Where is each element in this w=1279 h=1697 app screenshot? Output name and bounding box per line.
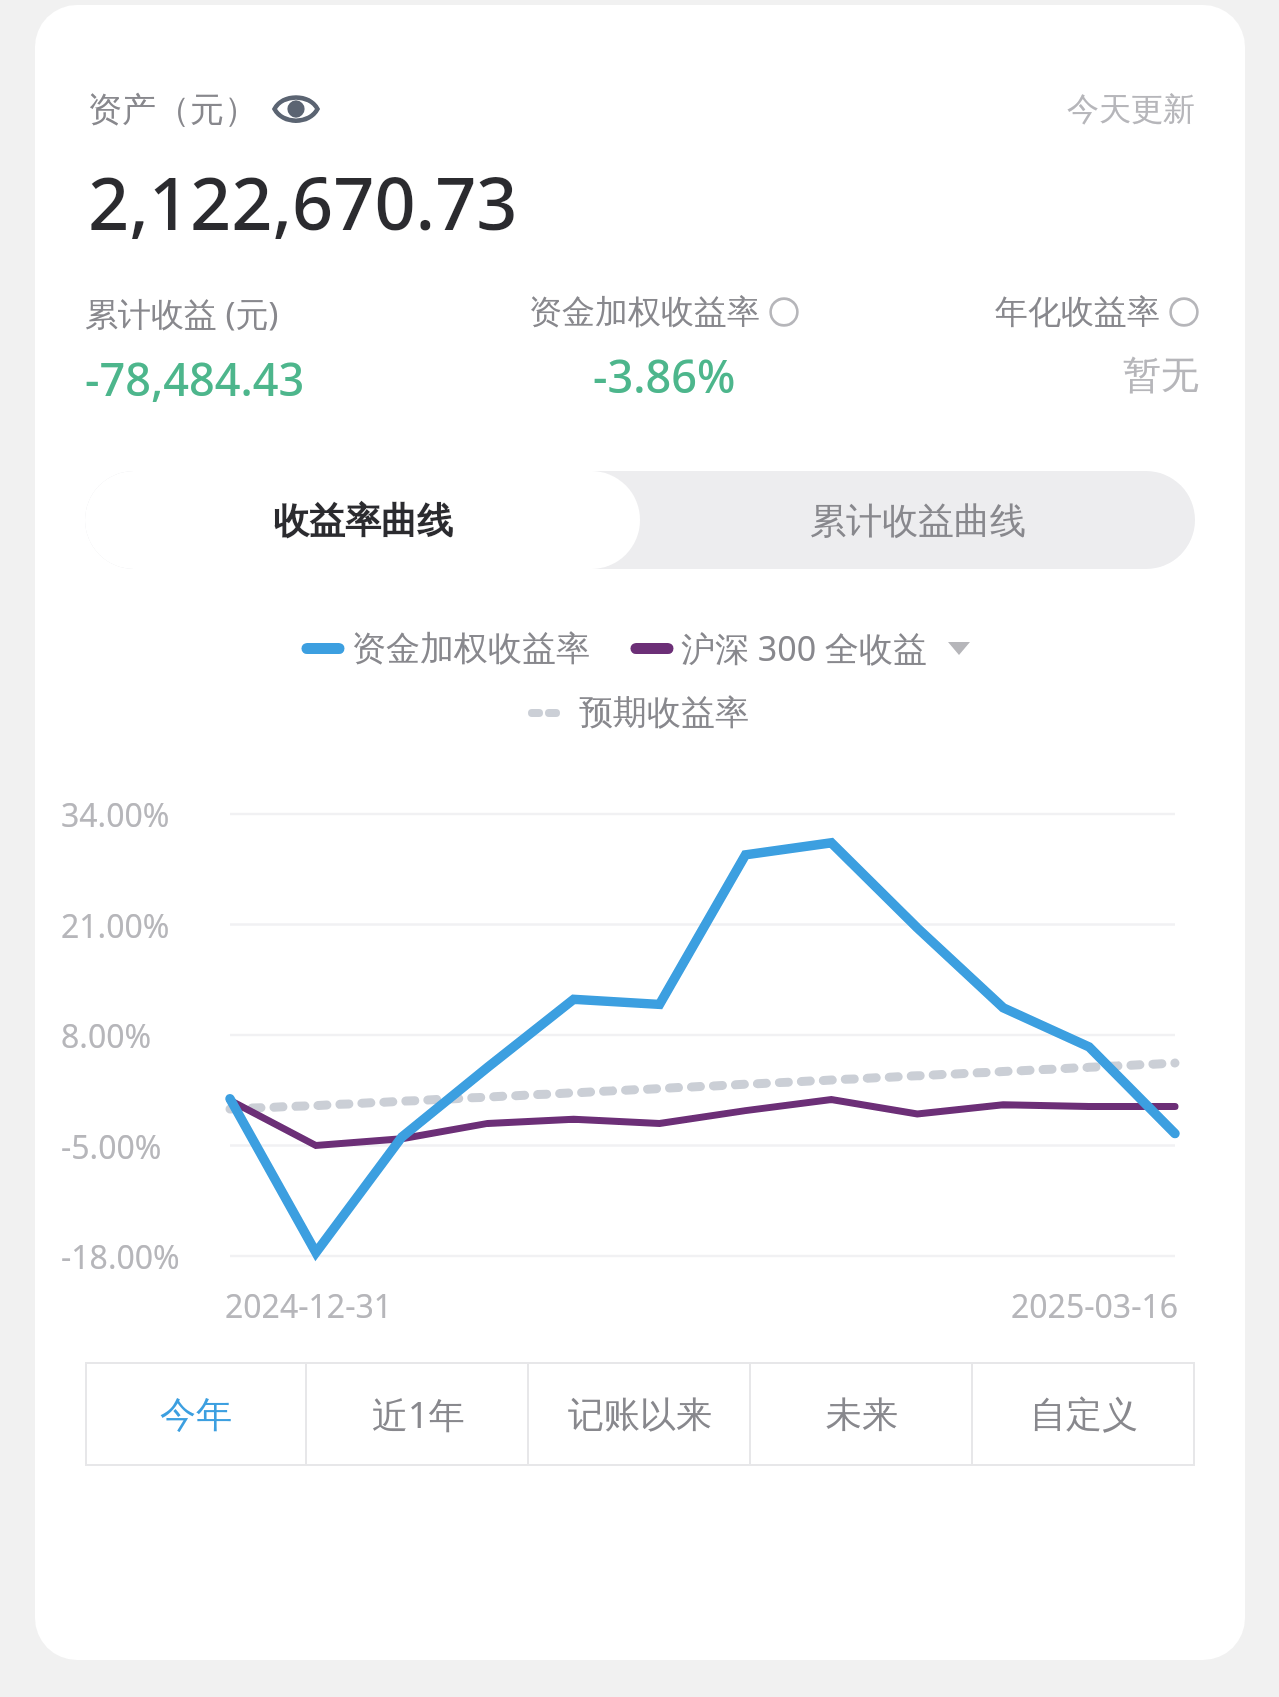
button[interactable]: 自定义 [973, 1362, 1195, 1466]
button[interactable]: 资金加权收益率 [463, 291, 865, 406]
staticText: -3.86% [593, 345, 736, 406]
staticText: 累计收益 (元) [85, 291, 279, 336]
staticText: 今天更新 [1067, 89, 1195, 129]
button[interactable]: Expand legend options [944, 633, 974, 663]
staticText: 今年 [160, 1392, 232, 1437]
button[interactable]: 记账以来 [529, 1362, 751, 1466]
staticText: 8.00% [61, 1014, 152, 1058]
button[interactable]: 累计收益 (元) [85, 291, 463, 409]
staticText: 未来 [826, 1392, 898, 1437]
button[interactable]: 收益率曲线 [85, 471, 640, 569]
staticText: 暂无 [1123, 351, 1199, 399]
button[interactable]: 未来 [751, 1362, 973, 1466]
staticText: 资产（元） [88, 88, 258, 131]
staticText: 预期收益率 [579, 691, 749, 734]
staticText: 记账以来 [568, 1392, 712, 1437]
staticText: 沪深 300 全收益 [681, 625, 928, 671]
staticText: 2025-03-16 [1011, 1284, 1179, 1328]
staticText: 21.00% [61, 904, 170, 948]
staticText: -5.00% [61, 1125, 162, 1169]
staticText: 34.00% [61, 793, 170, 837]
staticText: -78,484.43 [85, 348, 305, 409]
staticText: 累计收益曲线 [810, 498, 1026, 543]
staticText: 收益率曲线 [273, 498, 453, 543]
button[interactable]: Toggle asset visibility [268, 81, 324, 137]
staticText: 近1年 [372, 1390, 465, 1439]
button[interactable]: 今年 [85, 1362, 307, 1466]
staticText: -18.00% [61, 1235, 180, 1279]
button[interactable]: 今天更新 [1067, 89, 1195, 129]
staticText: 资金加权收益率 [529, 291, 760, 333]
staticText: 年化收益率 [995, 291, 1160, 333]
staticText: 2024-12-31 [225, 1284, 393, 1328]
button[interactable]: 年化收益率 [865, 291, 1199, 399]
button[interactable]: 近1年 [307, 1362, 529, 1466]
staticText: 资金加权收益率 [352, 627, 590, 670]
button[interactable]: 累计收益曲线 [640, 471, 1195, 569]
staticText: 2,122,670.73 [88, 153, 518, 251]
staticText: 自定义 [1030, 1392, 1138, 1437]
